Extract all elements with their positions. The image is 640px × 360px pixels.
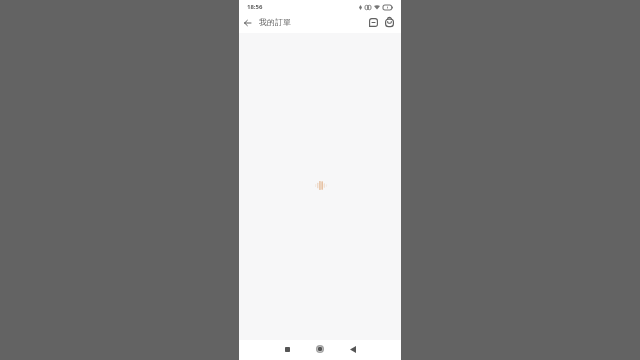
button[interactable]: Messages — [365, 14, 381, 30]
staticText: 我的訂單 — [259, 17, 291, 27]
button[interactable]: Recent apps — [278, 340, 296, 358]
button[interactable]: Back — [344, 340, 362, 358]
button[interactable]: Home — [311, 340, 329, 358]
button[interactable]: Shopping bag — [381, 14, 397, 30]
button[interactable]: Back — [239, 14, 256, 31]
staticText: 18:56 — [247, 3, 263, 11]
